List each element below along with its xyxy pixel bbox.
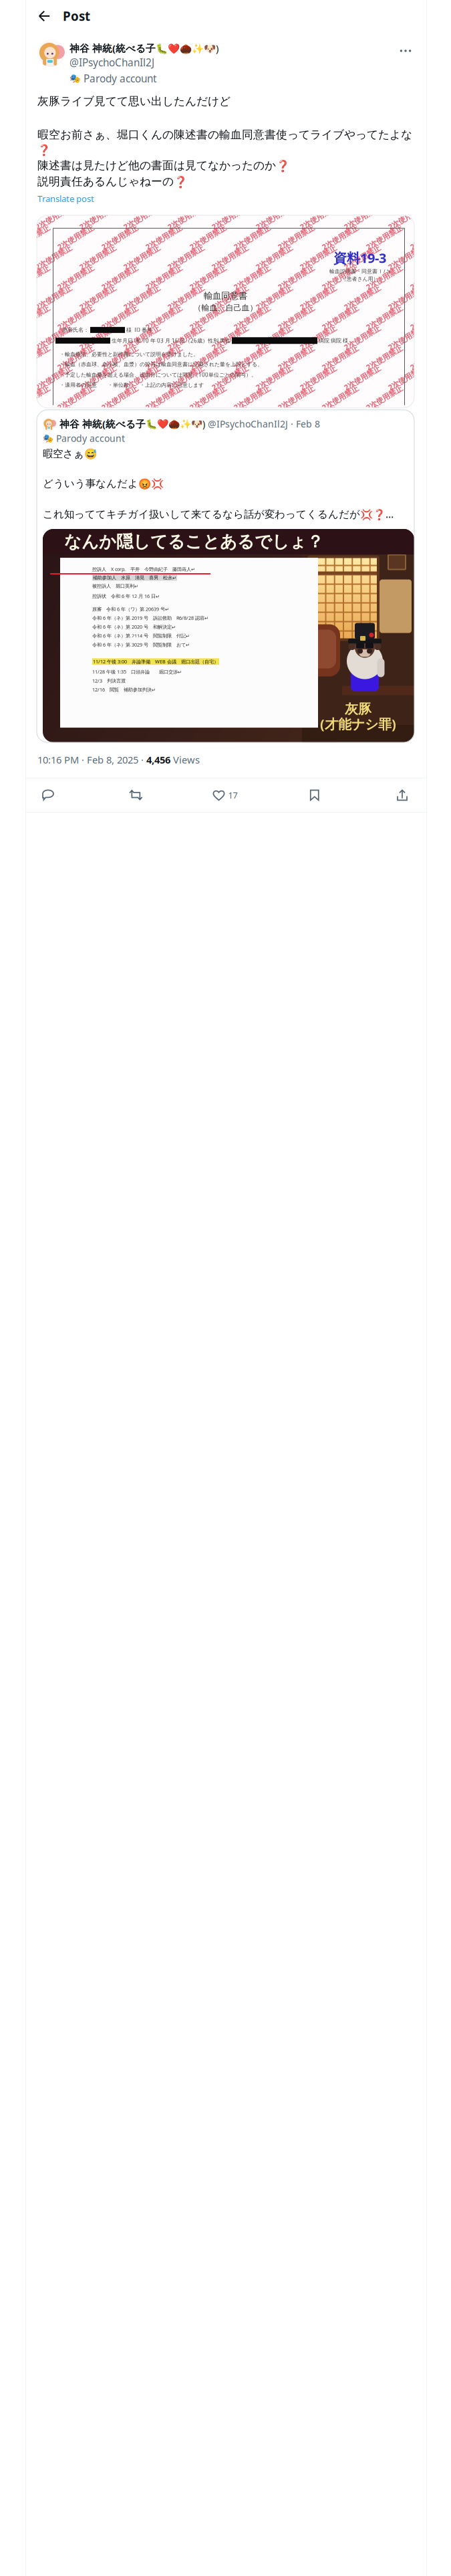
staticText: 2次使用禁止 — [276, 312, 316, 323]
staticText: 灰豚ライブ見てて思い出したんだけど — [37, 94, 231, 108]
button[interactable]: Like — [213, 784, 238, 807]
staticText: 2次使用禁止 — [33, 292, 74, 303]
staticText: 控訴人 X corp. 平井 今野由紀子 藤田蒔人↵ — [92, 566, 195, 572]
staticText: 患者氏名： — [62, 327, 89, 333]
staticText: 2次使用禁止 — [298, 212, 338, 222]
staticText: 2次使用禁止 — [364, 272, 405, 283]
button[interactable]: More — [394, 39, 417, 62]
staticText: 2次使用禁止 — [320, 232, 360, 242]
staticText: 2次使用禁止 — [187, 393, 228, 403]
staticText: 2次使用禁止 — [33, 373, 74, 383]
staticText: 病院 病院 様 — [319, 337, 348, 344]
staticText: 🐛❤️🌰✨🐶) — [146, 417, 205, 430]
button[interactable]: Translate post — [37, 191, 94, 205]
staticText: 2次使用禁止 — [209, 413, 250, 423]
staticText: ・予定した輸血量を超える場合、追加分については同意（100単位ごとの関与）。 — [59, 371, 257, 378]
staticText: 2次使用禁止 — [77, 413, 118, 423]
staticText: 2次使用禁止 — [254, 332, 294, 343]
staticText: 2次使用禁止 — [99, 352, 140, 363]
staticText: 10:16 PM · Feb 8, 2025 · — [37, 753, 146, 766]
staticText: どういう事なんだよ😡💢 — [43, 477, 164, 490]
staticText: 2次使用禁止 — [165, 212, 206, 222]
staticText: 2次使用禁止 — [121, 212, 162, 222]
staticText: (才能ナシ罪) — [320, 715, 396, 733]
staticText: @IPsychoChanIl2J · Feb 8 — [205, 417, 320, 430]
staticText: 🎭 — [43, 433, 53, 443]
staticText: 2次使用禁止 — [408, 312, 449, 323]
staticText: Post — [63, 8, 90, 25]
staticText: 2次使用禁止 — [386, 212, 427, 222]
staticText: 2次使用禁止 — [143, 272, 184, 283]
staticText: 🎭 — [69, 73, 81, 84]
staticText: Views — [170, 753, 200, 766]
staticText: 2次使用禁止 — [342, 332, 383, 343]
staticText: 2次使用禁止 — [121, 373, 162, 383]
staticText: 2次使用禁止 — [33, 413, 74, 423]
staticText: 2次使用禁止 — [33, 332, 74, 343]
staticText: 2次使用禁止 — [143, 312, 184, 323]
staticText: 2次使用禁止 — [320, 272, 360, 283]
button[interactable]: Bookmark — [304, 784, 325, 807]
staticText: 2次使用禁止 — [11, 232, 52, 242]
staticText: 2次使用禁止 — [99, 393, 140, 403]
staticText: 灰豚 — [345, 701, 371, 717]
staticText: 2次使用禁止 — [364, 352, 405, 363]
staticText: 2次使用禁止 — [143, 352, 184, 363]
staticText: 2次使用禁止 — [209, 292, 250, 303]
staticText: 2次使用禁止 — [187, 272, 228, 283]
staticText: 2次使用禁止 — [276, 272, 316, 283]
staticText: 2次使用禁止 — [77, 252, 118, 262]
staticText: 2次使用禁止 — [254, 292, 294, 303]
staticText: 2次使用禁止 — [121, 413, 162, 423]
staticText: 2次使用禁止 — [209, 373, 250, 383]
staticText: 2次使用禁止 — [298, 252, 338, 262]
button[interactable]: Share — [392, 784, 413, 807]
staticText: 2次使用禁止 — [187, 352, 228, 363]
button[interactable]: 神谷 神統(統べる子 — [37, 410, 414, 742]
staticText: 2次使用禁止 — [408, 393, 449, 403]
staticText: 2次使用禁止 — [55, 272, 96, 283]
staticText: 2次使用禁止 — [187, 312, 228, 323]
staticText: 控訴状 令和 6 年 12 月 16 日↵ — [92, 593, 160, 599]
staticText: 令和 6 年（ネ）第 3029 号 閲覧制限 おて↵ — [92, 641, 190, 648]
staticText: 2次使用禁止 — [99, 272, 140, 283]
staticText: 2次使用禁止 — [408, 352, 449, 363]
button[interactable]: Reply — [37, 784, 59, 807]
staticText: @IPsychoChanIl2J — [69, 56, 154, 69]
staticText: 原審 令和 6 年（ワ）第 20639 号↵ — [92, 606, 169, 612]
staticText: 2次使用禁止 — [364, 393, 405, 403]
staticText: 生年月日 和 10 年 03 月 16 日（26歳）性別 男性 — [112, 337, 231, 344]
button[interactable]: Back — [26, 0, 63, 32]
staticText: 2次使用禁止 — [232, 352, 272, 363]
staticText: 2次使用禁止 — [408, 433, 449, 443]
staticText: 2次使用禁止 — [209, 332, 250, 343]
staticText: 2次使用禁止 — [342, 212, 383, 222]
staticText: 2次使用禁止 — [364, 312, 405, 323]
staticText: 2次使用禁止 — [55, 312, 96, 323]
staticText: 2次使用禁止 — [121, 252, 162, 262]
staticText: 2次使用禁止 — [165, 252, 206, 262]
staticText: 2次使用禁止 — [342, 373, 383, 383]
staticText: 令和 6 年（ネ）第 2020 号 和解決定↵ — [92, 624, 176, 630]
staticText: 神谷 神統(統べる子 — [69, 41, 156, 55]
staticText: 神谷 神統(統べる子 — [59, 417, 146, 431]
staticText: 2次使用禁止 — [121, 332, 162, 343]
staticText: 2次使用禁止 — [165, 292, 206, 303]
button[interactable]: Repost — [125, 784, 146, 807]
staticText: （患者さん用） — [341, 275, 379, 282]
staticText: 陳述書は見たけど他の書面は見てなかったのか❓ — [37, 158, 290, 172]
staticText: 令和 6 年（ネ）第 2019 号 訴訟救助 R6/8/28 認容↵ — [92, 615, 208, 621]
staticText: 2次使用禁止 — [254, 212, 294, 222]
staticText: 2次使用禁止 — [209, 252, 250, 262]
staticText: 2次使用禁止 — [342, 292, 383, 303]
staticText: 2次使用禁止 — [254, 252, 294, 262]
